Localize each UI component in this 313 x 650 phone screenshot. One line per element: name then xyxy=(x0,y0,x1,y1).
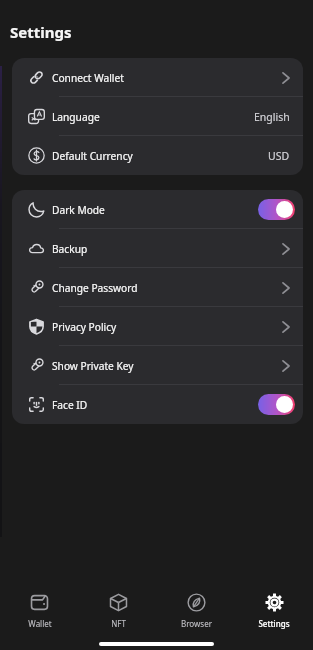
other: NFT xyxy=(109,593,128,612)
staticText: NFT xyxy=(111,618,126,629)
staticText: Change Password xyxy=(52,281,138,295)
button[interactable]: Backup xyxy=(12,229,303,268)
other: Wallet xyxy=(30,593,49,612)
button[interactable]: Browser xyxy=(157,589,235,633)
button[interactable]: Face ID xyxy=(12,385,303,424)
staticText: Dark Mode xyxy=(52,203,105,217)
button[interactable]: Connect Wallet xyxy=(12,58,303,97)
other: Settings xyxy=(265,593,284,612)
staticText: USD xyxy=(268,149,290,163)
staticText: Browser xyxy=(181,618,212,629)
staticText: Backup xyxy=(52,242,88,256)
staticText: Wallet xyxy=(28,618,52,629)
staticText: Face ID xyxy=(52,398,88,412)
button[interactable]: Show Private Key xyxy=(12,346,303,385)
staticText: Default Currency xyxy=(52,149,133,163)
other: Browser xyxy=(187,593,206,612)
button[interactable]: Language xyxy=(12,97,303,136)
button[interactable]: Wallet xyxy=(0,589,79,633)
button[interactable]: Privacy Policy xyxy=(12,307,303,346)
button[interactable]: Default Currency xyxy=(12,136,303,175)
button[interactable]: Change Password xyxy=(12,268,303,307)
staticText: English xyxy=(254,110,290,124)
button[interactable]: NFT xyxy=(79,589,157,633)
button[interactable]: Dark Mode xyxy=(12,190,303,229)
staticText: Show Private Key xyxy=(52,359,134,373)
staticText: Privacy Policy xyxy=(52,320,117,334)
button[interactable]: Toggle xyxy=(258,199,295,220)
button[interactable]: Toggle xyxy=(258,394,295,415)
staticText: Language xyxy=(52,110,100,124)
staticText: Connect Wallet xyxy=(52,71,124,85)
staticText: Settings xyxy=(10,22,72,42)
staticText: Settings xyxy=(258,618,290,629)
button[interactable]: Settings xyxy=(235,589,313,633)
